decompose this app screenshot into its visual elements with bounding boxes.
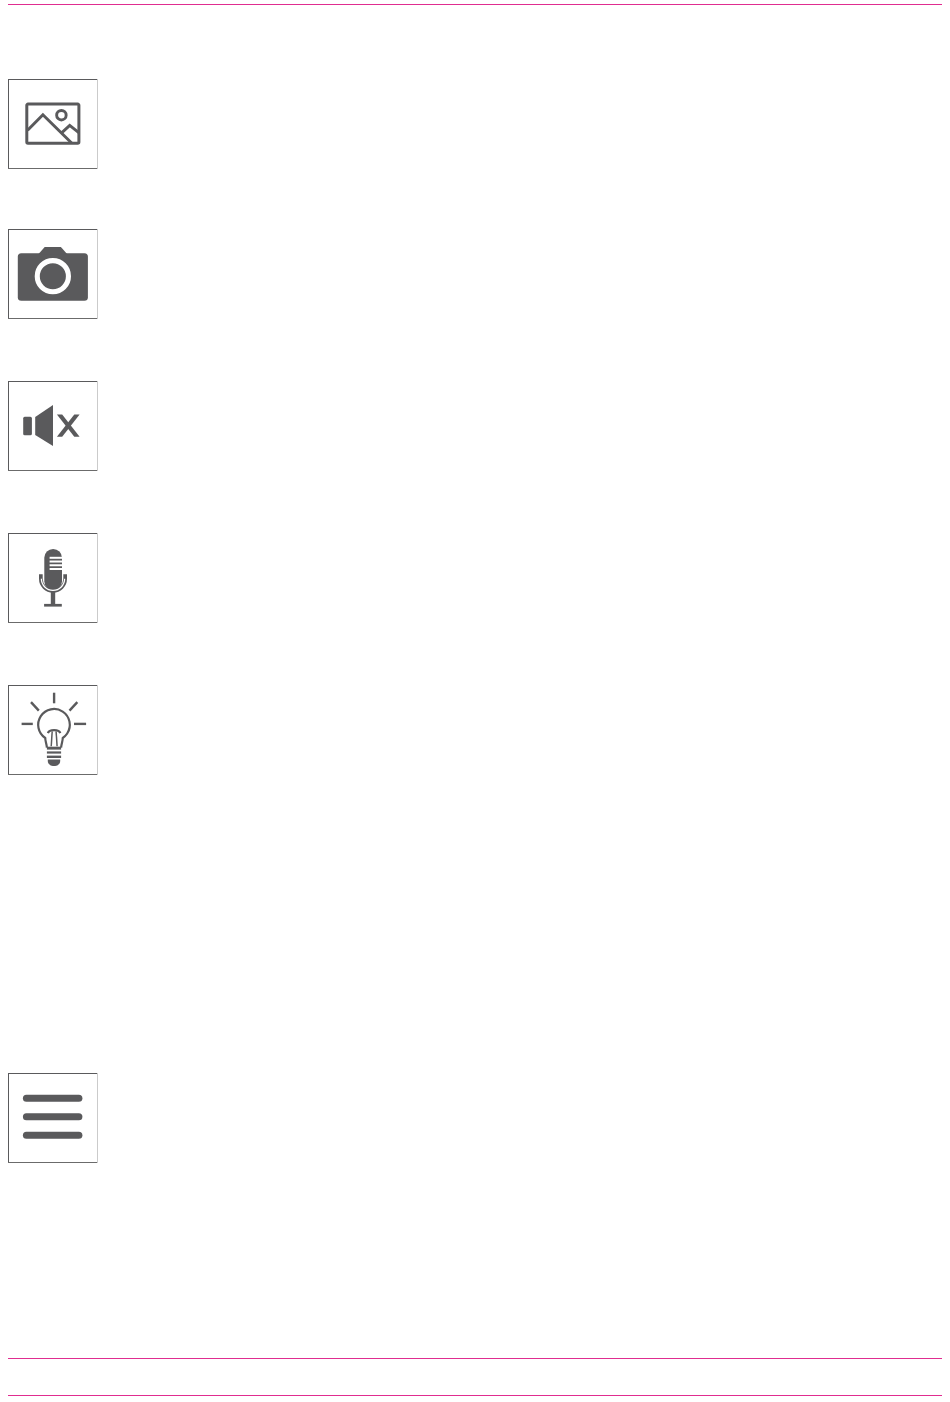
button[interactable]: Microphone bbox=[8, 533, 98, 623]
button[interactable]: Volume off bbox=[8, 381, 98, 471]
button[interactable]: Idea bbox=[8, 685, 98, 775]
button[interactable]: Menu bbox=[8, 1073, 98, 1163]
button[interactable]: Image bbox=[8, 79, 98, 169]
button[interactable]: Camera bbox=[8, 229, 98, 319]
